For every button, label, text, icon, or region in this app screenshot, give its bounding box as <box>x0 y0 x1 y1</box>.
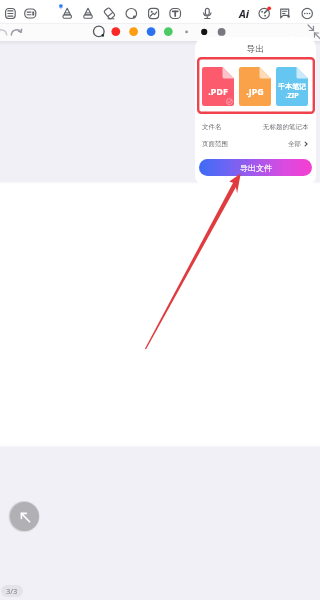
button[interactable]: .PDF <box>202 67 234 106</box>
staticText: .PDF <box>208 85 228 97</box>
staticText: .ZIP <box>285 91 299 101</box>
button[interactable]: Ai <box>236 5 252 22</box>
button[interactable]: Outline <box>2 5 19 22</box>
staticText: Ai <box>239 7 250 21</box>
button[interactable]: 文件名 <box>202 122 309 132</box>
staticText: 3/3 <box>6 586 18 596</box>
button[interactable]: Red <box>109 25 123 39</box>
button[interactable]: More <box>299 5 316 22</box>
button[interactable]: Pencil <box>80 5 97 22</box>
staticText: 页面范围 <box>202 140 228 148</box>
button[interactable]: .JPG <box>239 67 271 106</box>
staticText: 文件名 <box>202 123 222 131</box>
button[interactable]: Medium stroke <box>197 25 211 39</box>
button[interactable]: Blue <box>144 25 158 39</box>
staticText: 全部 <box>288 140 301 148</box>
staticText: .JPG <box>246 85 264 97</box>
button[interactable]: Colour picker <box>92 25 106 39</box>
button[interactable]: Orange <box>127 25 141 39</box>
button[interactable]: Thin stroke <box>180 25 194 39</box>
button[interactable]: Magic <box>256 5 273 22</box>
button[interactable]: Undo <box>0 25 9 39</box>
button[interactable]: Redo <box>9 25 23 39</box>
button[interactable]: 页面范围 <box>202 139 309 149</box>
button[interactable]: Comment <box>277 5 294 22</box>
button[interactable]: Thick stroke <box>215 25 229 39</box>
button[interactable]: Green <box>161 25 175 39</box>
button[interactable]: 导出文件 <box>199 159 312 176</box>
button[interactable]: Image <box>146 5 163 22</box>
button[interactable]: Record <box>199 5 216 22</box>
button[interactable]: Text <box>167 5 184 22</box>
staticText: 导出 <box>195 43 316 54</box>
button[interactable]: Lasso <box>123 5 140 22</box>
button[interactable]: Notes <box>22 5 39 22</box>
button[interactable]: Resize panel <box>304 23 320 41</box>
button[interactable]: Pen <box>59 5 76 22</box>
staticText: 千本笔记 <box>278 82 306 91</box>
button[interactable]: 千本笔记 <box>276 67 308 106</box>
button[interactable]: Eraser <box>102 5 119 22</box>
staticText: 无标题的笔记本 <box>263 123 309 131</box>
button[interactable]: Collapse toolbar <box>10 502 39 531</box>
button[interactable]: 3/3 <box>1 585 23 597</box>
staticText: 导出文件 <box>240 163 272 173</box>
